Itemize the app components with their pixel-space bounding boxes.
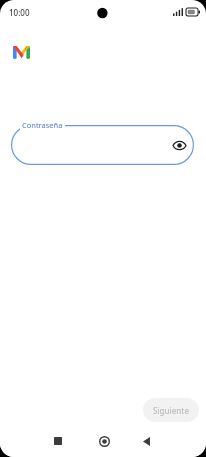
button[interactable]: Inicio bbox=[94, 431, 114, 451]
button[interactable]: Mostrar contraseña bbox=[170, 136, 188, 154]
staticText: 10:00 bbox=[9, 7, 30, 18]
button[interactable] bbox=[11, 125, 194, 165]
staticText: Contraseña bbox=[22, 120, 63, 130]
button[interactable]: Aplicaciones recientes bbox=[48, 431, 68, 451]
button[interactable]: Atrás bbox=[136, 431, 156, 451]
button[interactable]: Siguiente bbox=[143, 398, 199, 422]
staticText: Siguiente bbox=[153, 405, 189, 416]
